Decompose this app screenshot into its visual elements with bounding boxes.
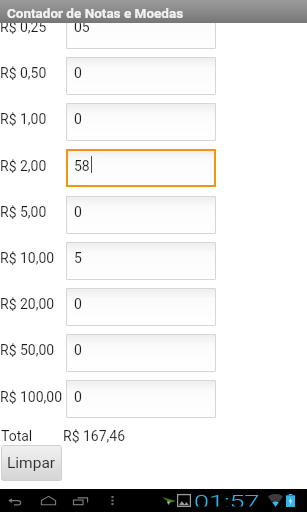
staticText: 0	[74, 204, 82, 220]
staticText: 01:57	[194, 490, 260, 507]
staticText: R$ 0,50	[0, 65, 47, 81]
button[interactable]	[66, 288, 216, 326]
staticText: 0	[74, 111, 82, 127]
staticText: 0	[74, 389, 82, 405]
staticText: R$ 5,00	[0, 204, 47, 220]
staticText: 0	[74, 65, 82, 81]
staticText: R$ 100,00	[0, 389, 63, 405]
button[interactable]	[66, 11, 216, 49]
button[interactable]: More options	[104, 489, 120, 512]
staticText: 0	[74, 342, 82, 358]
button[interactable]	[66, 242, 216, 280]
button[interactable]: Recent apps	[69, 489, 91, 512]
staticText: Limpar	[7, 454, 56, 472]
button[interactable]	[66, 196, 216, 234]
staticText: R$ 0,25	[0, 19, 47, 35]
staticText: R$ 10,00	[0, 250, 55, 266]
button[interactable]	[66, 57, 216, 95]
staticText: Contador de Notas e Moedas	[7, 5, 184, 21]
staticText: R$ 2,00	[0, 158, 47, 174]
staticText: 5	[74, 250, 82, 266]
staticText: R$ 167,46	[63, 428, 126, 444]
button[interactable]	[66, 334, 216, 372]
button[interactable]: Limpar	[1, 445, 62, 481]
staticText: 05	[74, 19, 90, 35]
button[interactable]: Home	[37, 489, 59, 512]
button[interactable]	[66, 103, 216, 141]
staticText: 58	[74, 158, 90, 174]
button[interactable]	[66, 380, 216, 418]
button[interactable]	[66, 149, 216, 187]
staticText: R$ 50,00	[0, 342, 55, 358]
staticText: R$ 1,00	[0, 111, 47, 127]
staticText: Total	[1, 428, 33, 444]
staticText: 0	[74, 296, 82, 312]
staticText: R$ 20,00	[0, 296, 55, 312]
button[interactable]: Back	[3, 489, 25, 512]
